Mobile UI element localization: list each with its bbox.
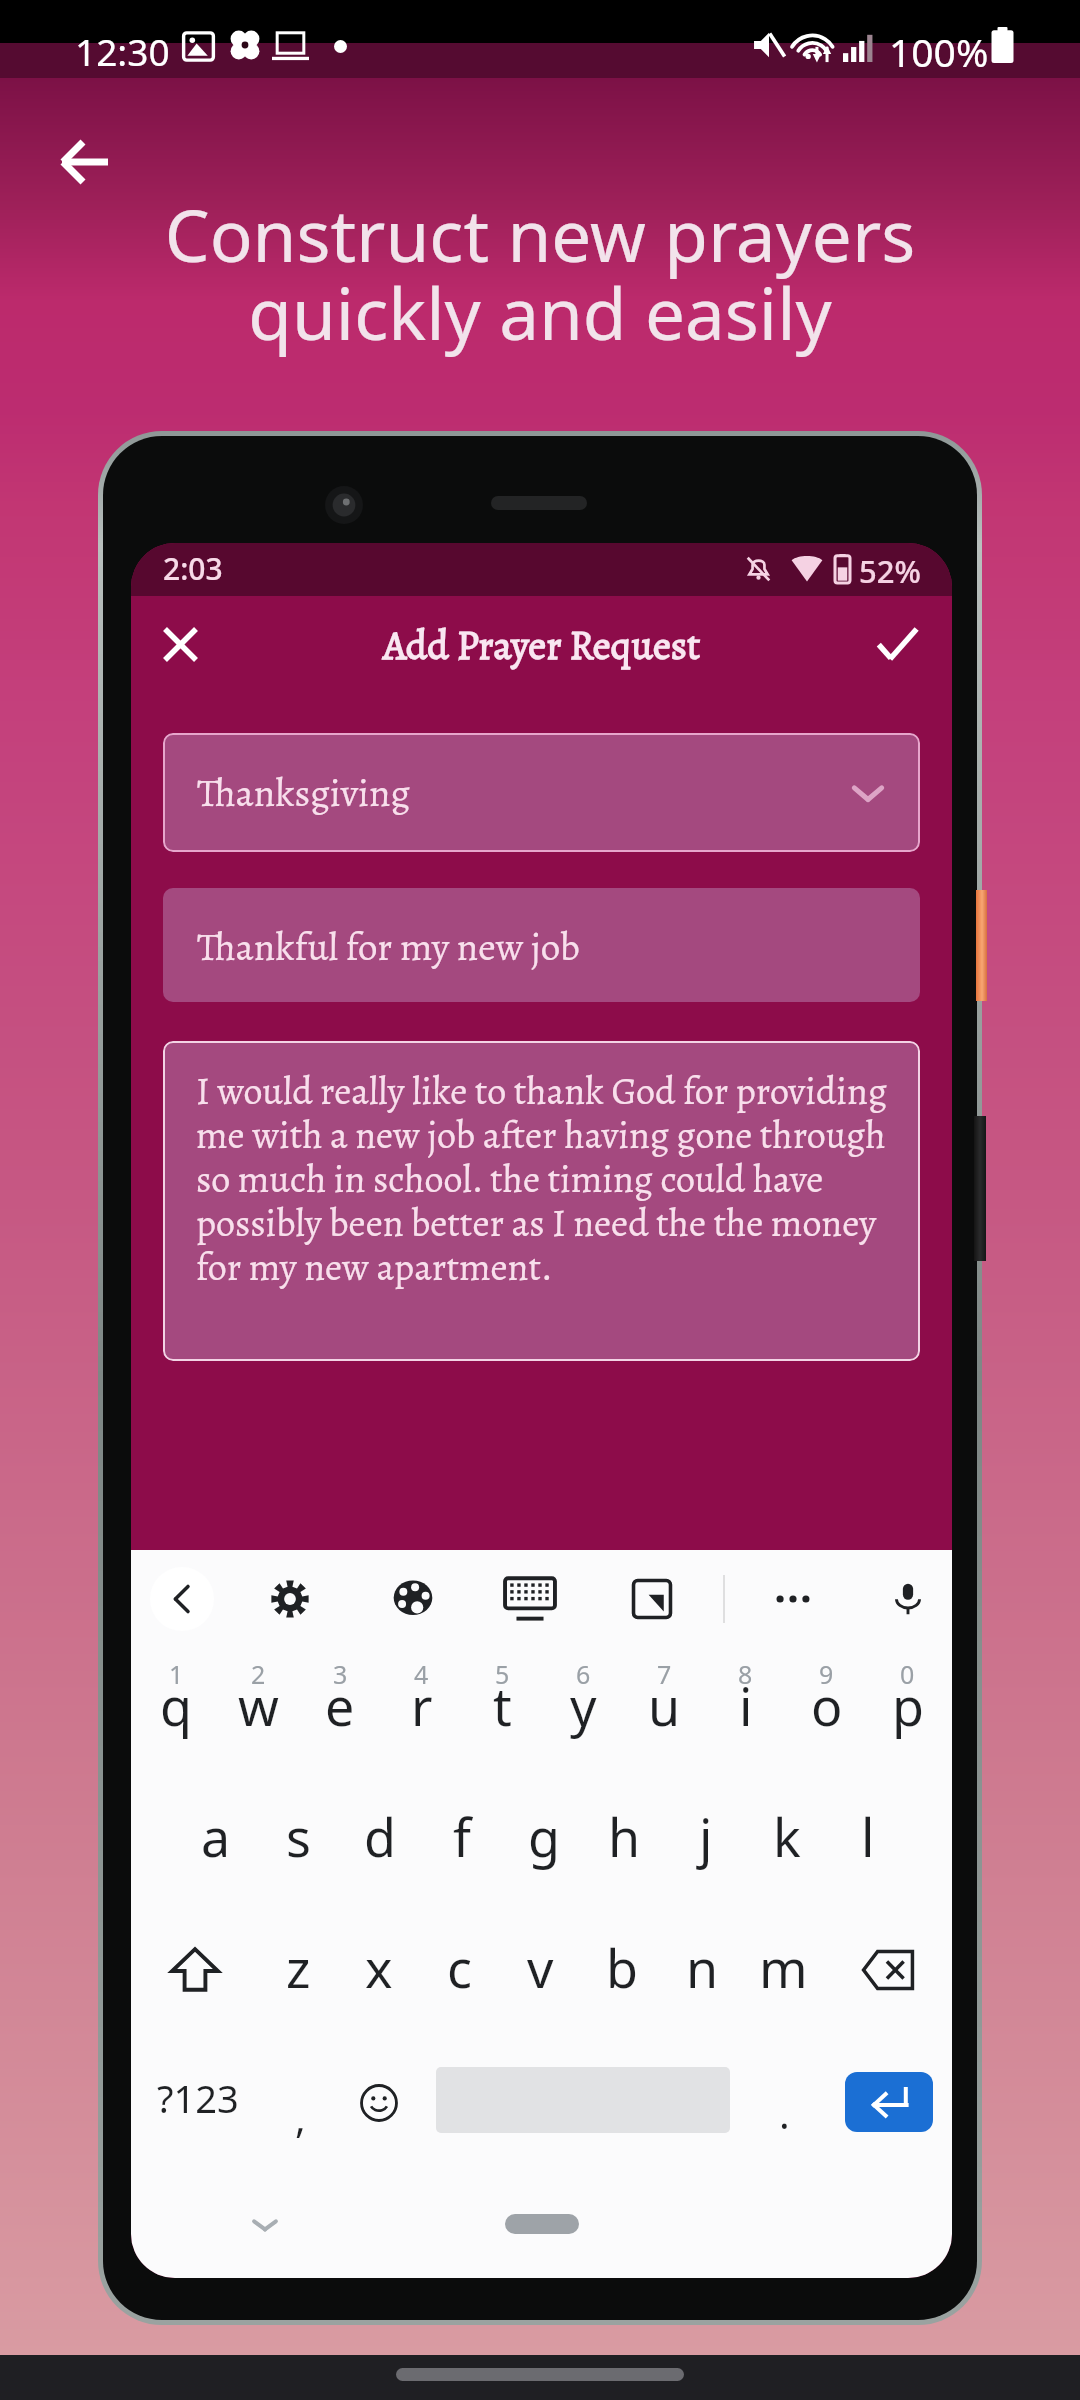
staticText: 100% (889, 25, 989, 78)
button[interactable]: Save (859, 606, 935, 682)
button[interactable]: Close (142, 606, 218, 682)
staticText: , (295, 2090, 306, 2144)
button[interactable]: Emoji (344, 2058, 414, 2148)
staticText: Thankful for my new job (197, 920, 580, 973)
button[interactable]: 7 (624, 1648, 705, 1780)
staticText: u (648, 1670, 681, 1741)
staticText: y (570, 1670, 597, 1741)
staticText: 3 (333, 1657, 348, 1691)
button[interactable]: Enter (845, 2072, 933, 2132)
button[interactable]: , (262, 2058, 338, 2148)
button[interactable]: Back (40, 117, 130, 207)
staticText: h (608, 1801, 641, 1872)
button[interactable]: s (257, 1780, 339, 1912)
button[interactable]: f (421, 1780, 503, 1912)
staticText: q (160, 1670, 192, 1741)
button[interactable]: 8 (705, 1648, 786, 1780)
staticText: k (773, 1801, 801, 1872)
button[interactable]: x (338, 1912, 419, 2044)
button[interactable]: 2 (217, 1648, 299, 1780)
staticText: j (699, 1801, 713, 1872)
staticText: 12:30 (75, 26, 170, 76)
staticText: t (493, 1670, 512, 1741)
staticText: i (739, 1670, 753, 1741)
button[interactable]: Theme (382, 1568, 444, 1630)
staticText: d (364, 1801, 396, 1872)
button[interactable]: Shift (131, 1912, 258, 2044)
staticText: o (811, 1670, 843, 1741)
button[interactable]: 4 (381, 1648, 462, 1780)
button[interactable]: Hide keyboard (239, 2198, 291, 2250)
staticText: g (528, 1801, 560, 1872)
button[interactable]: v (500, 1912, 581, 2044)
button[interactable]: I would really like to thank God for pro… (163, 1041, 920, 1361)
staticText: 0 (900, 1657, 915, 1691)
staticText: 52% (859, 550, 921, 592)
staticText: x (365, 1932, 393, 2003)
button[interactable]: n (662, 1912, 743, 2044)
staticText: Thanksgiving (197, 766, 411, 819)
button[interactable]: Keyboard layout (499, 1568, 561, 1630)
staticText: m (759, 1932, 808, 2003)
staticText: e (325, 1670, 355, 1741)
staticText: r (411, 1670, 433, 1741)
staticText: 4 (414, 1657, 429, 1691)
button[interactable]: 0 (867, 1648, 948, 1780)
button[interactable]: l (827, 1780, 908, 1912)
button[interactable]: 3 (299, 1648, 381, 1780)
staticText: s (286, 1801, 311, 1872)
button[interactable]: m (743, 1912, 824, 2044)
button[interactable]: ?123 (147, 2053, 249, 2143)
staticText: z (286, 1932, 311, 2003)
button[interactable]: 5 (462, 1648, 543, 1780)
button[interactable]: Settings (259, 1568, 321, 1630)
staticText: 9 (819, 1657, 834, 1691)
staticText: p (892, 1670, 924, 1741)
staticText: 6 (576, 1657, 591, 1691)
button[interactable]: h (584, 1780, 665, 1912)
staticText: b (606, 1932, 638, 2003)
staticText: w (238, 1670, 279, 1741)
staticText: f (453, 1801, 471, 1872)
staticText: 1 (169, 1657, 184, 1691)
button[interactable]: d (339, 1780, 421, 1912)
staticText: 2:03 (163, 548, 223, 589)
button[interactable]: z (258, 1912, 338, 2044)
button[interactable]: b (581, 1912, 662, 2044)
button[interactable]: g (503, 1780, 584, 1912)
staticText: v (527, 1932, 554, 2003)
staticText: 2 (251, 1657, 266, 1691)
button[interactable]: 6 (543, 1648, 624, 1780)
button[interactable]: 1 (135, 1648, 217, 1780)
button[interactable]: 9 (786, 1648, 867, 1780)
button[interactable]: More options (762, 1568, 824, 1630)
staticText: ?123 (157, 2072, 239, 2124)
staticText: 7 (657, 1657, 672, 1691)
button[interactable]: k (746, 1780, 827, 1912)
button[interactable]: Voice input (877, 1568, 939, 1630)
button[interactable]: . (751, 2058, 817, 2148)
staticText: l (861, 1801, 875, 1872)
staticText: . (779, 2086, 790, 2140)
button[interactable]: j (665, 1780, 746, 1912)
button[interactable]: a (175, 1780, 257, 1912)
button[interactable]: Back (150, 1567, 214, 1631)
button[interactable]: Backspace (824, 1912, 952, 2044)
button[interactable]: Thanksgiving (163, 733, 920, 852)
staticText: n (686, 1932, 719, 2003)
staticText: a (201, 1801, 231, 1872)
staticText: 5 (495, 1657, 510, 1691)
staticText: Add Prayer Request (383, 618, 701, 672)
button[interactable]: Thankful for my new job (163, 888, 920, 1002)
staticText: Construct new prayers quickly and easily (0, 186, 1080, 361)
staticText: 8 (738, 1657, 753, 1691)
button[interactable]: c (419, 1912, 500, 2044)
staticText: I would really like to thank God for pro… (196, 1065, 896, 1293)
staticText: c (447, 1932, 472, 2003)
button[interactable]: Sticker (621, 1568, 683, 1630)
